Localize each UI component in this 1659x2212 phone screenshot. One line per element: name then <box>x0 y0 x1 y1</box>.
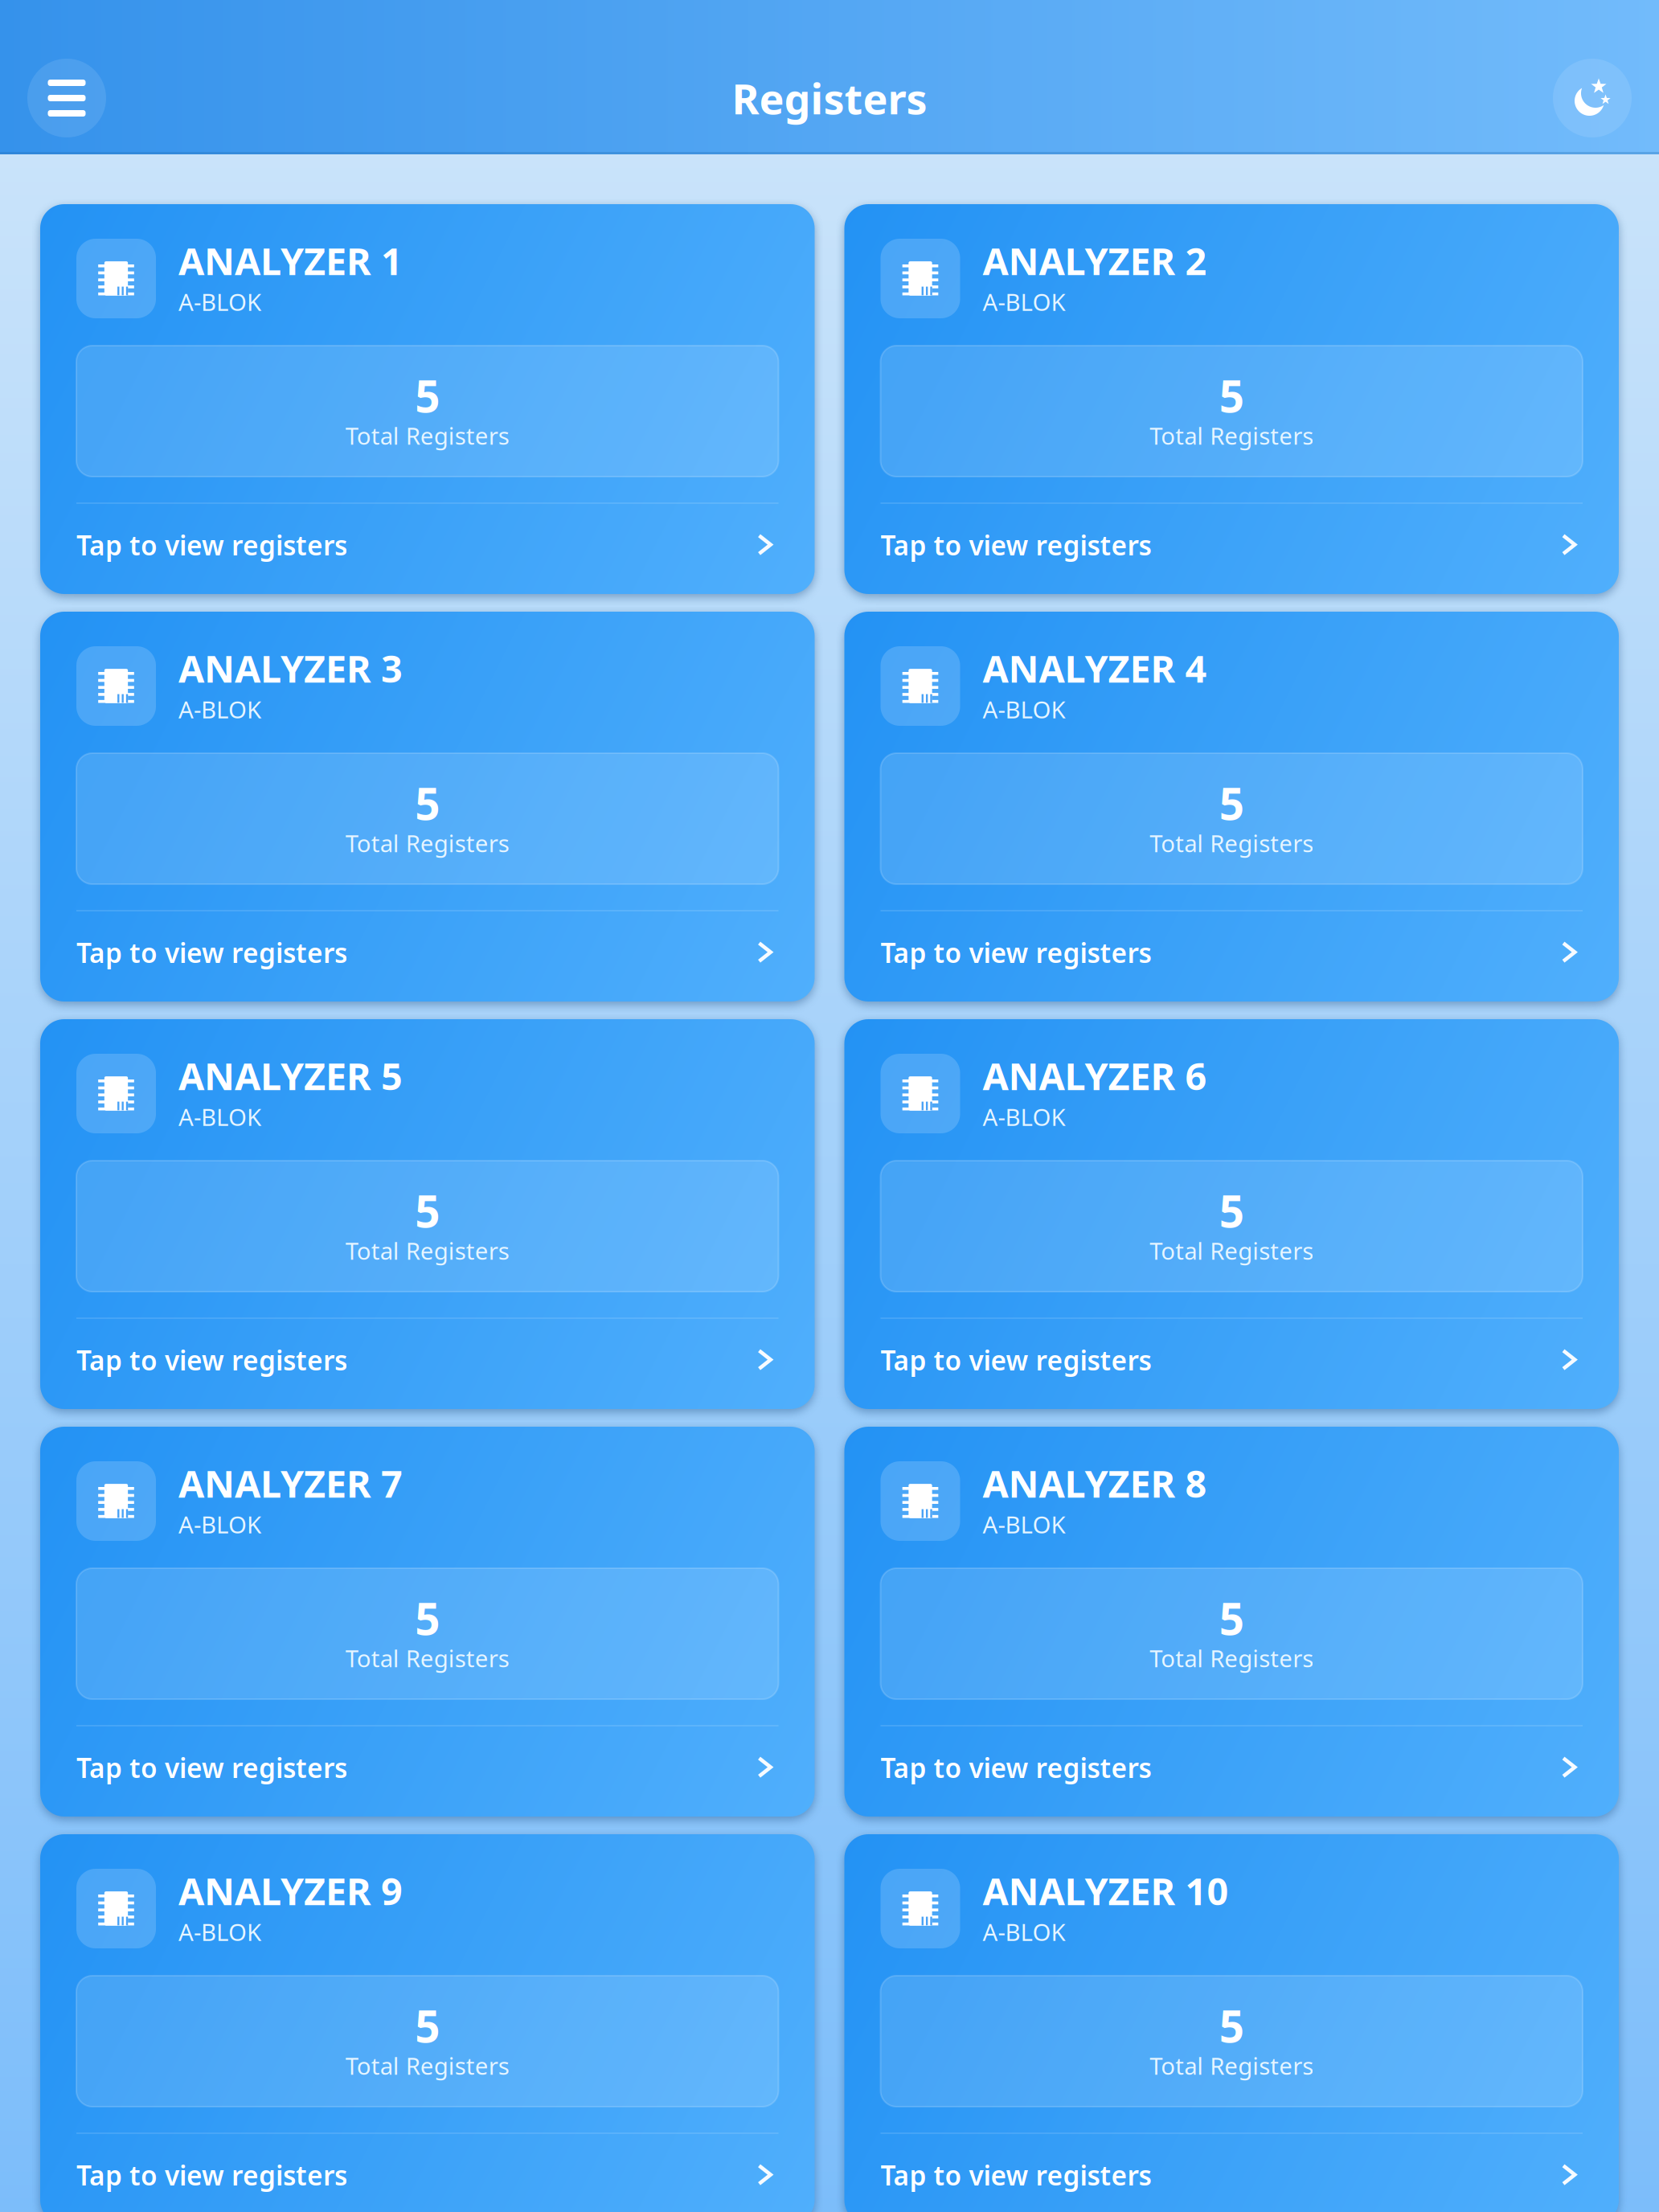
staticText: Tap to view registers <box>881 2157 1151 2193</box>
staticText: 5 <box>1219 366 1244 425</box>
staticText: Registers <box>732 70 927 126</box>
staticText: ANALYZER 10 <box>983 1866 1229 1915</box>
staticText: Total Registers <box>345 827 509 859</box>
staticText: A-BLOK <box>983 1509 1065 1540</box>
staticText: Tap to view registers <box>881 527 1151 563</box>
button[interactable]: ANALYZER 6 <box>844 1019 1619 1409</box>
staticText: Total Registers <box>1150 420 1314 451</box>
button[interactable]: ANALYZER 10 <box>844 1834 1619 2212</box>
staticText: A-BLOK <box>178 1916 261 1948</box>
staticText: Tap to view registers <box>881 1750 1151 1785</box>
staticText: Total Registers <box>345 420 509 451</box>
staticText: ANALYZER 9 <box>178 1866 403 1915</box>
staticText: A-BLOK <box>178 286 261 317</box>
button[interactable]: ANALYZER 1 <box>40 204 815 594</box>
staticText: 5 <box>1219 774 1244 832</box>
staticText: Total Registers <box>1150 1235 1314 1266</box>
staticText: 5 <box>415 1996 440 2055</box>
staticText: Total Registers <box>1150 2050 1314 2081</box>
button[interactable]: ANALYZER 7 <box>40 1427 815 1817</box>
staticText: ANALYZER 7 <box>178 1458 403 1508</box>
staticText: 5 <box>1219 1181 1244 1240</box>
button[interactable]: ANALYZER 5 <box>40 1019 815 1409</box>
staticText: ANALYZER 4 <box>983 643 1207 693</box>
staticText: Total Registers <box>1150 1642 1314 1674</box>
staticText: ANALYZER 6 <box>983 1051 1207 1100</box>
staticText: ANALYZER 2 <box>983 236 1207 285</box>
staticText: Total Registers <box>345 1235 509 1266</box>
staticText: A-BLOK <box>983 1101 1065 1133</box>
button[interactable]: ANALYZER 4 <box>844 612 1619 1002</box>
staticText: 5 <box>1219 1589 1244 1647</box>
button[interactable]: ANALYZER 8 <box>844 1427 1619 1817</box>
staticText: 5 <box>415 774 440 832</box>
staticText: A-BLOK <box>178 694 261 725</box>
staticText: ANALYZER 1 <box>178 236 403 285</box>
staticText: 5 <box>415 366 440 425</box>
staticText: 5 <box>415 1589 440 1647</box>
staticText: A-BLOK <box>983 694 1065 725</box>
button[interactable]: ANALYZER 2 <box>844 204 1619 594</box>
staticText: Total Registers <box>345 1642 509 1674</box>
button[interactable]: ANALYZER 3 <box>40 612 815 1002</box>
staticText: Tap to view registers <box>76 527 347 563</box>
staticText: Tap to view registers <box>76 2157 347 2193</box>
button[interactable]: ANALYZER 9 <box>40 1834 815 2212</box>
staticText: Tap to view registers <box>76 1342 347 1378</box>
staticText: A-BLOK <box>178 1509 261 1540</box>
staticText: Tap to view registers <box>881 1342 1151 1378</box>
button[interactable]: Dark mode <box>1553 59 1632 137</box>
staticText: Total Registers <box>1150 827 1314 859</box>
staticText: 5 <box>415 1181 440 1240</box>
staticText: A-BLOK <box>178 1101 261 1133</box>
staticText: 5 <box>1219 1996 1244 2055</box>
button[interactable]: Menu <box>27 59 106 137</box>
staticText: A-BLOK <box>983 1916 1065 1948</box>
staticText: ANALYZER 5 <box>178 1051 403 1100</box>
staticText: ANALYZER 3 <box>178 643 403 693</box>
staticText: Tap to view registers <box>881 935 1151 970</box>
staticText: Tap to view registers <box>76 1750 347 1785</box>
staticText: Total Registers <box>345 2050 509 2081</box>
staticText: Tap to view registers <box>76 935 347 970</box>
staticText: ANALYZER 8 <box>983 1458 1207 1508</box>
staticText: A-BLOK <box>983 286 1065 317</box>
